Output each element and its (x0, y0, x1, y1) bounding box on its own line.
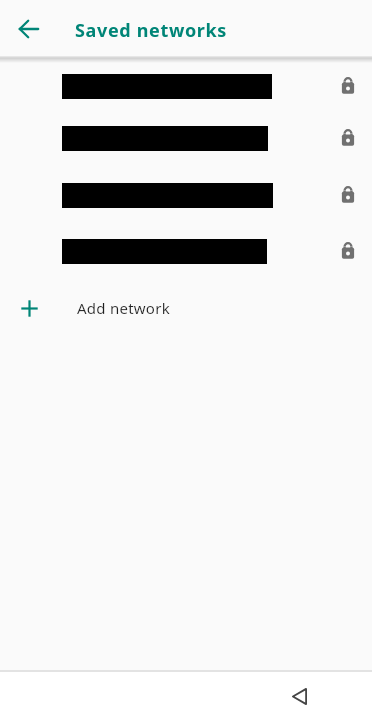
button[interactable]: Add network (0, 280, 372, 336)
button[interactable] (0, 111, 372, 166)
button[interactable] (0, 168, 372, 223)
button[interactable] (0, 224, 372, 279)
button[interactable] (279, 676, 319, 716)
staticText: Add network (77, 298, 170, 318)
button[interactable] (0, 59, 372, 114)
staticText: Saved networks (75, 18, 228, 43)
button[interactable] (9, 9, 49, 49)
